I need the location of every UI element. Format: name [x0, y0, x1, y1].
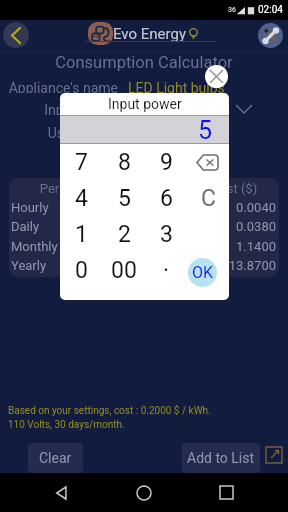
staticText: 0.0040 — [192, 200, 276, 215]
button[interactable]: Back — [42, 473, 82, 512]
staticText: 5 — [198, 116, 213, 143]
staticText: 5 — [118, 185, 131, 212]
staticText: 9 — [160, 149, 173, 176]
button[interactable]: 3 — [145, 216, 187, 252]
button[interactable]: · — [145, 252, 187, 288]
staticText: Yearly — [11, 258, 106, 273]
staticText: 02:04 — [258, 4, 283, 16]
other: Backspace — [196, 154, 219, 171]
staticText: 7 — [75, 149, 88, 176]
button[interactable]: C — [187, 180, 229, 216]
button[interactable]: Home — [124, 473, 164, 512]
button[interactable]: Close — [205, 65, 228, 88]
staticText: 1 — [75, 221, 88, 248]
button[interactable]: Clear — [28, 443, 83, 473]
staticText: 0 — [75, 257, 88, 284]
button[interactable]: Settings — [258, 23, 283, 48]
button[interactable]: Open list — [266, 447, 282, 463]
button[interactable]: 5 — [103, 180, 145, 216]
staticText: 0.0200 — [106, 200, 192, 215]
button[interactable]: Backspace — [187, 144, 229, 180]
staticText: C — [201, 185, 216, 212]
staticText: 8 — [118, 149, 131, 176]
staticText: Consumption Calculator — [0, 53, 288, 72]
button[interactable]: 8 — [103, 144, 145, 180]
staticText: OK — [192, 263, 214, 282]
staticText: 4 — [75, 185, 88, 212]
staticText: Evo Energy — [113, 25, 186, 43]
staticText: Input power — [108, 96, 182, 112]
button[interactable]: Back — [3, 22, 29, 48]
staticText: Add to List — [187, 450, 255, 466]
staticText: 5 W — [128, 102, 152, 115]
button[interactable]: Add to List — [182, 443, 260, 473]
staticText: Period — [11, 181, 106, 196]
staticText: 2 — [118, 221, 131, 248]
button[interactable]: Recents — [206, 473, 246, 512]
staticText: Input power — [0, 102, 118, 115]
button[interactable]: 6 — [145, 180, 187, 216]
staticText: LED Light bulbs — [128, 80, 225, 93]
button[interactable]: Number — [0, 147, 288, 160]
button[interactable]: 00 — [103, 252, 145, 288]
staticText: Daily — [11, 219, 106, 234]
button[interactable]: 9 — [145, 144, 187, 180]
staticText: Monthly — [11, 239, 106, 254]
button[interactable]: Input power — [0, 102, 288, 115]
staticText: 69.3500 — [106, 258, 192, 273]
button[interactable]: Appliance's name — [0, 80, 288, 93]
staticText: 13.8700 — [192, 258, 276, 273]
staticText: 5.7000 — [106, 239, 192, 254]
staticText: 0.0380 — [192, 219, 276, 234]
staticText: kWh — [106, 181, 192, 196]
staticText: 0.1900 — [106, 219, 192, 234]
staticText: Hourly — [11, 200, 106, 215]
staticText: Based on your settings, cost : 0.2000 $ … — [8, 405, 211, 417]
staticText: Clear — [39, 450, 72, 466]
staticText: 6 — [160, 185, 173, 212]
button[interactable]: 7 — [60, 144, 103, 180]
staticText: Appliance's name — [0, 80, 118, 93]
staticText: Number — [0, 147, 118, 160]
staticText: 36 — [228, 6, 236, 14]
staticText: 1 — [128, 147, 136, 160]
button[interactable]: 4 — [60, 180, 103, 216]
staticText: Cost ($) — [192, 181, 276, 196]
button[interactable]: 2 — [103, 216, 145, 252]
button[interactable]: OK — [187, 252, 229, 288]
staticText: · — [163, 257, 170, 284]
button[interactable]: 1 — [60, 216, 103, 252]
staticText: 1.1400 — [192, 239, 276, 254]
staticText: 00 — [111, 257, 137, 284]
staticText: 3 — [160, 221, 173, 248]
button[interactable]: OK — [188, 258, 217, 287]
staticText: Usage time — [0, 125, 118, 138]
staticText: 110 Volts, 30 days/month. — [8, 419, 125, 431]
button[interactable]: 0 — [60, 252, 103, 288]
button[interactable]: Usage time — [0, 125, 288, 138]
